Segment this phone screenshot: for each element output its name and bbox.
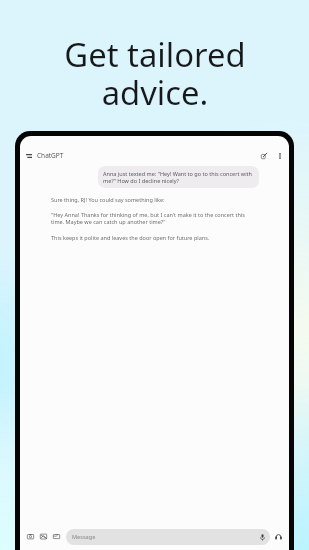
staticText: "Hey Anna! Thanks for thinking of me, bu… bbox=[51, 211, 259, 225]
button[interactable]: Photos bbox=[37, 530, 50, 543]
staticText: ChatGPT bbox=[37, 151, 64, 160]
staticText: Message bbox=[72, 533, 96, 541]
staticText: Get tailored advice. bbox=[64, 32, 246, 115]
staticText: Sure thing, RJ! You could say something … bbox=[51, 196, 165, 203]
staticText: Anna just texted me: "Hey! Want to go to… bbox=[103, 170, 254, 184]
button[interactable]: Files bbox=[50, 530, 63, 543]
button[interactable]: More options bbox=[271, 147, 288, 164]
staticText: This keeps it polite and leaves the door… bbox=[51, 234, 210, 241]
button[interactable]: Menu bbox=[20, 147, 37, 164]
button[interactable]: Camera bbox=[24, 530, 37, 543]
button[interactable]: New chat bbox=[255, 147, 272, 164]
button[interactable]: Message bbox=[66, 529, 270, 545]
button[interactable]: Voice mode bbox=[270, 529, 286, 545]
